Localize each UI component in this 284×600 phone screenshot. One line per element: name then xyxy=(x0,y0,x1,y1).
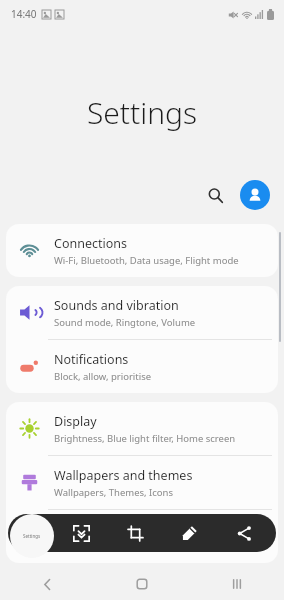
staticText: Sounds and vibration xyxy=(54,297,179,314)
button[interactable]: Screenshot preview xyxy=(10,514,54,558)
button[interactable]: Home xyxy=(94,568,189,600)
button[interactable]: Account xyxy=(240,180,270,210)
staticText: Display xyxy=(54,413,97,430)
staticText: Lock screen xyxy=(54,521,123,538)
staticText: Settings xyxy=(0,92,284,133)
button[interactable]: Recent apps xyxy=(189,568,284,600)
button[interactable]: Scroll capture xyxy=(54,514,108,552)
button[interactable]: Search xyxy=(198,178,232,212)
button[interactable]: Connections xyxy=(6,224,278,277)
staticText: Notifications xyxy=(54,351,129,368)
staticText: Screen lock type, Always On Display, Clo… xyxy=(54,540,265,553)
button[interactable]: Notifications xyxy=(6,340,278,393)
button[interactable]: Sounds and vibration xyxy=(6,286,278,339)
staticText: Connections xyxy=(54,235,127,252)
button[interactable]: Display xyxy=(6,402,278,455)
staticText: Wallpapers, Themes, Icons xyxy=(54,486,174,499)
staticText: Wallpapers and themes xyxy=(54,467,193,484)
staticText: Block, allow, prioritise xyxy=(54,370,152,383)
staticText: Settings xyxy=(23,533,41,539)
button[interactable]: Lock screen xyxy=(6,510,278,563)
button[interactable]: Wallpapers and themes xyxy=(6,456,278,509)
staticText: 14:40 xyxy=(11,7,37,21)
button[interactable]: Crop xyxy=(108,514,162,552)
button[interactable]: Back xyxy=(0,568,94,600)
button[interactable]: Edit xyxy=(162,514,217,552)
staticText: Brightness, Blue light filter, Home scre… xyxy=(54,432,236,445)
staticText: Wi-Fi, Bluetooth, Data usage, Flight mod… xyxy=(54,254,239,267)
button[interactable]: Share xyxy=(217,514,272,552)
staticText: Sound mode, Ringtone, Volume xyxy=(54,316,196,329)
